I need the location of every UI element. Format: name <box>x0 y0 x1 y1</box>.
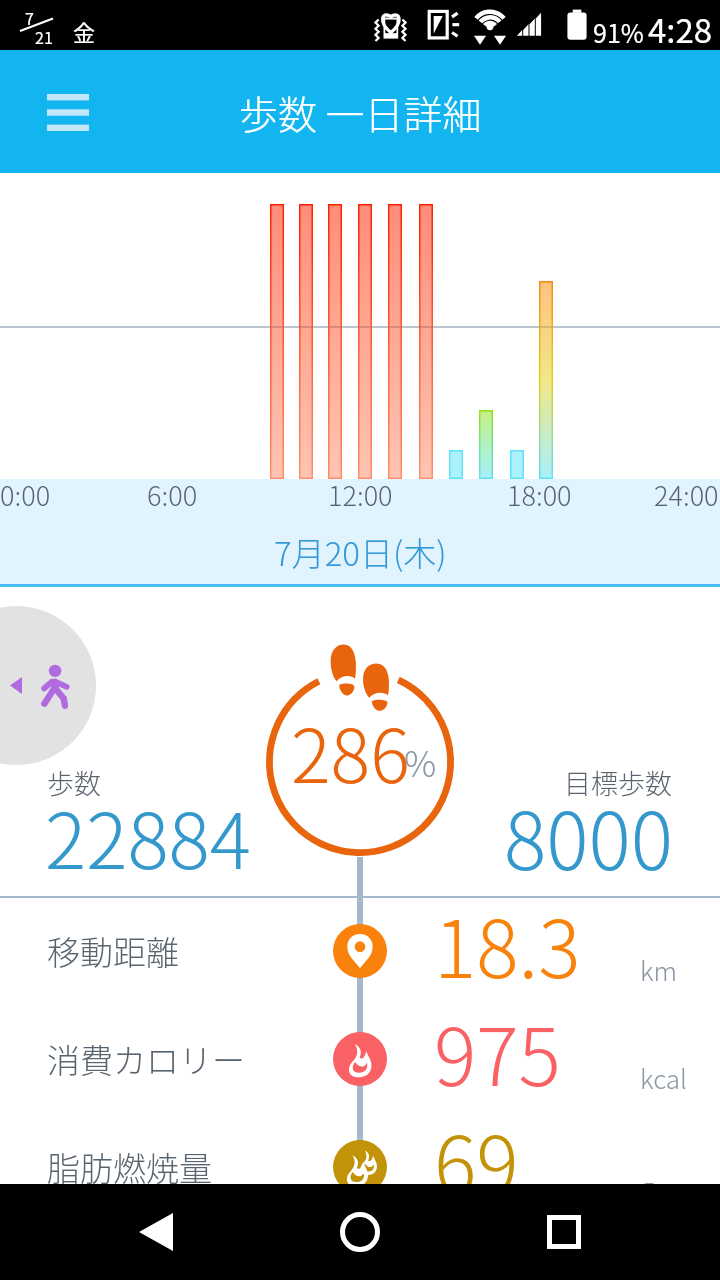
staticText: 金 <box>73 15 96 47</box>
staticText: 286 <box>291 697 410 804</box>
staticText: g <box>640 1167 655 1205</box>
button[interactable]: 移動距離 <box>0 897 720 1005</box>
staticText: 8000 <box>504 778 674 892</box>
staticText: 4:28 <box>648 5 713 53</box>
staticText: km <box>640 951 678 989</box>
button[interactable]: Back <box>108 1184 204 1280</box>
staticText: 6:00 <box>147 475 198 514</box>
staticText: 91% <box>593 14 644 50</box>
staticText: 消費カロリー <box>47 1035 245 1083</box>
staticText: 24:00 <box>654 475 719 514</box>
staticText: 69 <box>434 1102 519 1210</box>
staticText: 21 <box>35 25 53 48</box>
button[interactable]: 脂肪燃焼量 <box>0 1113 720 1221</box>
staticText: % <box>404 735 437 787</box>
staticText: 18.3 <box>434 886 581 994</box>
staticText: kcal <box>640 1059 687 1097</box>
button[interactable]: Home <box>312 1184 408 1280</box>
staticText: 歩数 一日詳細 <box>239 84 482 140</box>
staticText: 12:00 <box>328 475 393 514</box>
staticText: 7月20日(木) <box>274 528 447 576</box>
button[interactable]: Previous day <box>0 606 96 765</box>
staticText: 22884 <box>45 780 251 891</box>
staticText: 18:00 <box>507 475 572 514</box>
staticText: 7 <box>25 6 34 29</box>
staticText: 0:00 <box>0 475 51 514</box>
staticText: 移動距離 <box>47 927 179 975</box>
button[interactable]: Menu <box>23 67 113 157</box>
button[interactable]: 消費カロリー <box>0 1005 720 1113</box>
staticText: 目標歩数 <box>564 763 672 802</box>
staticText: 歩数 <box>47 763 101 802</box>
button[interactable]: Recent apps <box>516 1184 612 1280</box>
staticText: 975 <box>434 994 561 1102</box>
staticText: 脂肪燃焼量 <box>47 1143 212 1191</box>
